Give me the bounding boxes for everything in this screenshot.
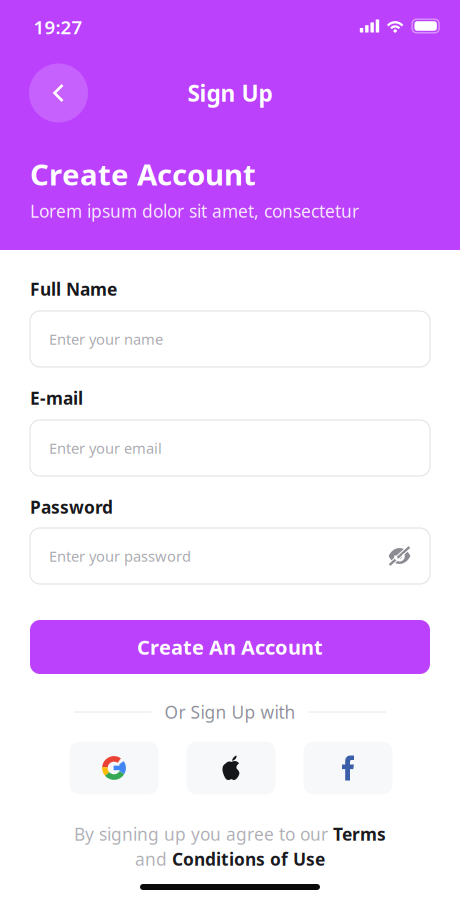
staticText: Create Account: [30, 154, 256, 193]
staticText: 19:27: [33, 15, 82, 39]
button[interactable]: Sign up with Google: [69, 741, 158, 794]
button[interactable]: Sign up with Facebook: [303, 741, 392, 794]
staticText: Sign Up: [187, 78, 272, 108]
button[interactable]: Sign up with Apple: [186, 741, 275, 794]
staticText: Terms: [333, 822, 386, 845]
staticText: Conditions of Use: [172, 847, 325, 870]
staticText: Full Name: [30, 277, 117, 300]
staticText: and: [135, 847, 172, 870]
staticText: Enter your name: [49, 329, 163, 349]
staticText: Create An Account: [137, 634, 323, 660]
button[interactable]: Back: [29, 63, 88, 122]
staticText: Password: [30, 495, 113, 518]
staticText: Enter your password: [49, 546, 191, 566]
button[interactable]: Enter your email: [30, 420, 430, 476]
button[interactable]: Conditions of Use: [172, 847, 325, 870]
staticText: Enter your email: [49, 438, 162, 458]
staticText: Or Sign Up with: [164, 700, 295, 723]
button[interactable]: Terms: [333, 822, 386, 845]
button[interactable]: Create An Account: [30, 620, 430, 674]
staticText: E-mail: [30, 386, 83, 409]
button[interactable]: Enter your password: [30, 528, 430, 584]
staticText: Lorem ipsum dolor sit amet, consectetur: [30, 199, 359, 222]
staticText: By signing up you agree to our: [74, 822, 333, 845]
button[interactable]: Enter your name: [30, 311, 430, 367]
